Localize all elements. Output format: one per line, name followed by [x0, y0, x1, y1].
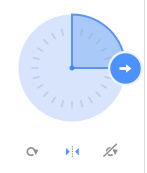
- button[interactable]: Repeat: [22, 143, 40, 161]
- button[interactable]: Fit to screen: [64, 144, 80, 160]
- button[interactable]: No repeat: [101, 143, 119, 161]
- button[interactable]: Start: [107, 50, 143, 86]
